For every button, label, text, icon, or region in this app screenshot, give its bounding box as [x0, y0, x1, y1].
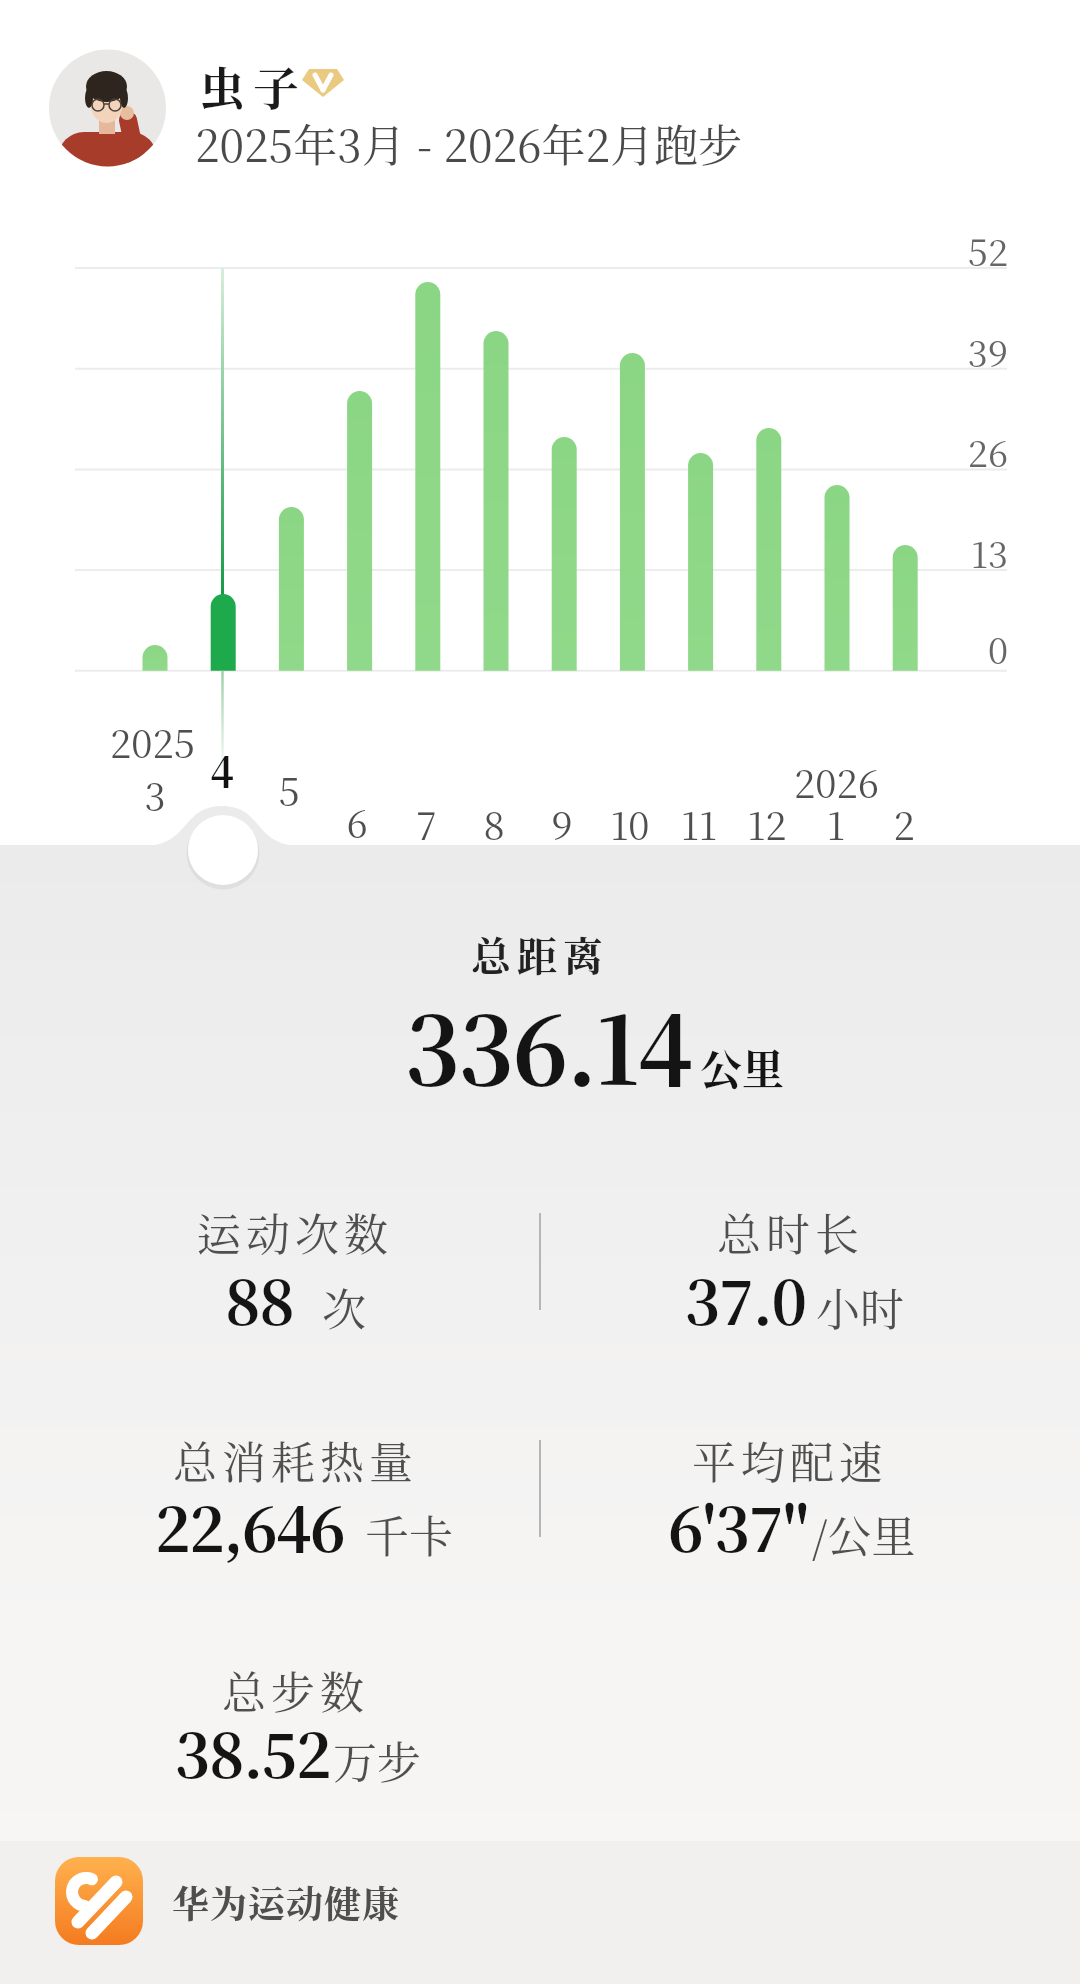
staticText: 39	[967, 326, 1008, 378]
staticText: 38.52	[175, 1709, 331, 1795]
staticText: 总消耗热量	[173, 1428, 418, 1491]
staticText: 2026	[794, 754, 879, 809]
staticText: 平均配速	[692, 1428, 888, 1491]
staticText: 次	[322, 1275, 366, 1338]
staticText: 总步数	[222, 1658, 369, 1721]
staticText: 虫子	[195, 52, 303, 118]
staticText: 2025	[110, 714, 195, 769]
staticText: 37.0	[685, 1256, 806, 1342]
staticText: 11	[681, 796, 717, 851]
staticText: 千卡	[365, 1502, 453, 1565]
staticText: 9	[551, 796, 573, 851]
staticText: 1	[827, 796, 845, 851]
button[interactable]: 336.14	[405, 977, 785, 1112]
staticText: 22,646	[155, 1483, 345, 1569]
staticText: 6'37"	[668, 1483, 808, 1569]
staticText: 10	[610, 796, 650, 851]
staticText: 2	[893, 796, 915, 851]
staticText: 26	[967, 426, 1008, 478]
staticText: 6	[346, 794, 368, 849]
staticText: /公里	[812, 1502, 916, 1565]
staticText: 13	[970, 527, 1008, 579]
button[interactable]	[50, 50, 167, 167]
staticText: 小时	[816, 1275, 904, 1338]
staticText: 公里	[700, 1037, 785, 1097]
staticText: 3	[144, 767, 166, 822]
staticText: 52	[967, 225, 1008, 277]
staticText: 12	[747, 796, 787, 851]
staticText: 总距离	[471, 925, 609, 982]
staticText: 8	[483, 796, 505, 851]
staticText: 7	[416, 796, 437, 851]
staticText: 2025年3月 - 2026年2月跑步	[195, 111, 743, 174]
staticText: 万步	[333, 1728, 421, 1791]
staticText: 华为运动健康	[172, 1875, 400, 1928]
staticText: 88	[225, 1256, 294, 1342]
staticText: 运动次数	[197, 1200, 393, 1263]
button[interactable]	[55, 1857, 143, 1945]
staticText: 0	[987, 623, 1008, 675]
staticText: 336.14	[405, 977, 692, 1112]
staticText: 5	[278, 762, 300, 817]
staticText: 总时长	[717, 1200, 864, 1263]
staticText: 4	[210, 741, 234, 798]
